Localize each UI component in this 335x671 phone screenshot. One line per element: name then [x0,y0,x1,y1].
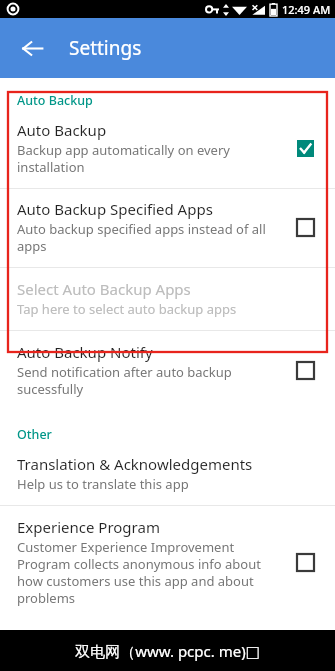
staticText: Customer Experience Improvement Program … [17,538,277,607]
staticText: 双电网（www. pcpc. me)□ [75,641,260,661]
button[interactable]: Select Auto Backup Apps [0,268,335,330]
staticText: Auto backup specified apps instead of al… [17,220,277,255]
staticText: Settings [69,35,142,61]
staticText: Other [17,426,335,443]
button[interactable]: Experience Program [0,506,335,619]
staticText: Translation & Acknowledgements [17,454,253,474]
button[interactable]: Back [10,26,54,70]
button[interactable]: Auto Backup Specified Apps [0,189,335,267]
staticText: Auto Backup Notify [17,342,153,362]
staticText: Send notification after auto backup suce… [17,363,277,398]
button[interactable]: Auto Backup Notify [0,331,335,410]
staticText: Auto Backup [17,92,335,109]
staticText: Auto Backup [17,120,107,140]
button[interactable]: Auto Backup [0,111,335,188]
button[interactable]: Unchecked [283,205,327,249]
staticText: Tap here to select auto backup apps [17,300,237,318]
staticText: Backup app automatically on every instal… [17,141,277,176]
staticText: Help us to translate this app [17,475,189,493]
staticText: Experience Program [17,517,160,537]
staticText: 12:49 AM [282,2,331,17]
button[interactable]: Unchecked [283,540,327,584]
staticText: Auto Backup Specified Apps [17,199,213,219]
staticText: Select Auto Backup Apps [17,279,191,299]
button[interactable]: Translation & Acknowledgements [0,445,335,505]
button[interactable]: Checked [283,126,327,170]
button[interactable]: Unchecked [283,348,327,392]
